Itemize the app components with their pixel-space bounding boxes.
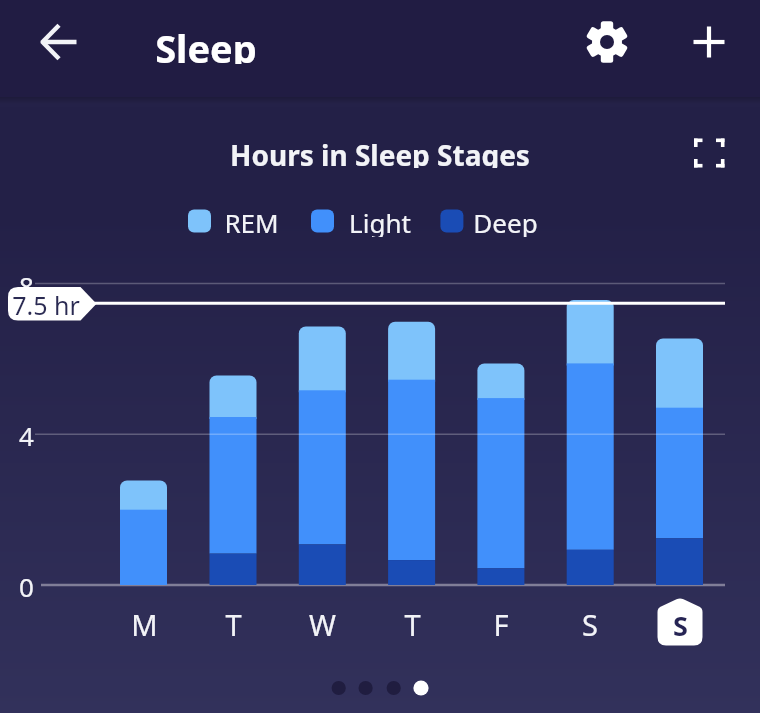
staticText: W [309,605,336,639]
staticText: Light [349,205,411,237]
staticText: F [493,605,509,639]
staticText: S [673,607,688,641]
staticText: 0 [19,569,34,601]
staticText: REM [224,205,279,237]
button[interactable] [688,133,730,173]
staticText: Hours in Sleep Stages [230,136,530,168]
staticText: T [404,605,421,639]
button[interactable] [685,18,733,66]
staticText: Deep [473,205,538,237]
staticText: S [582,605,598,639]
staticText: 7.5 hr [12,288,80,320]
staticText: Sleep [155,22,257,64]
staticText: 8 [19,268,34,300]
staticText: M [131,605,158,639]
button[interactable] [583,18,631,66]
button[interactable] [34,17,84,67]
staticText: T [225,605,242,639]
staticText: 4 [19,418,34,450]
